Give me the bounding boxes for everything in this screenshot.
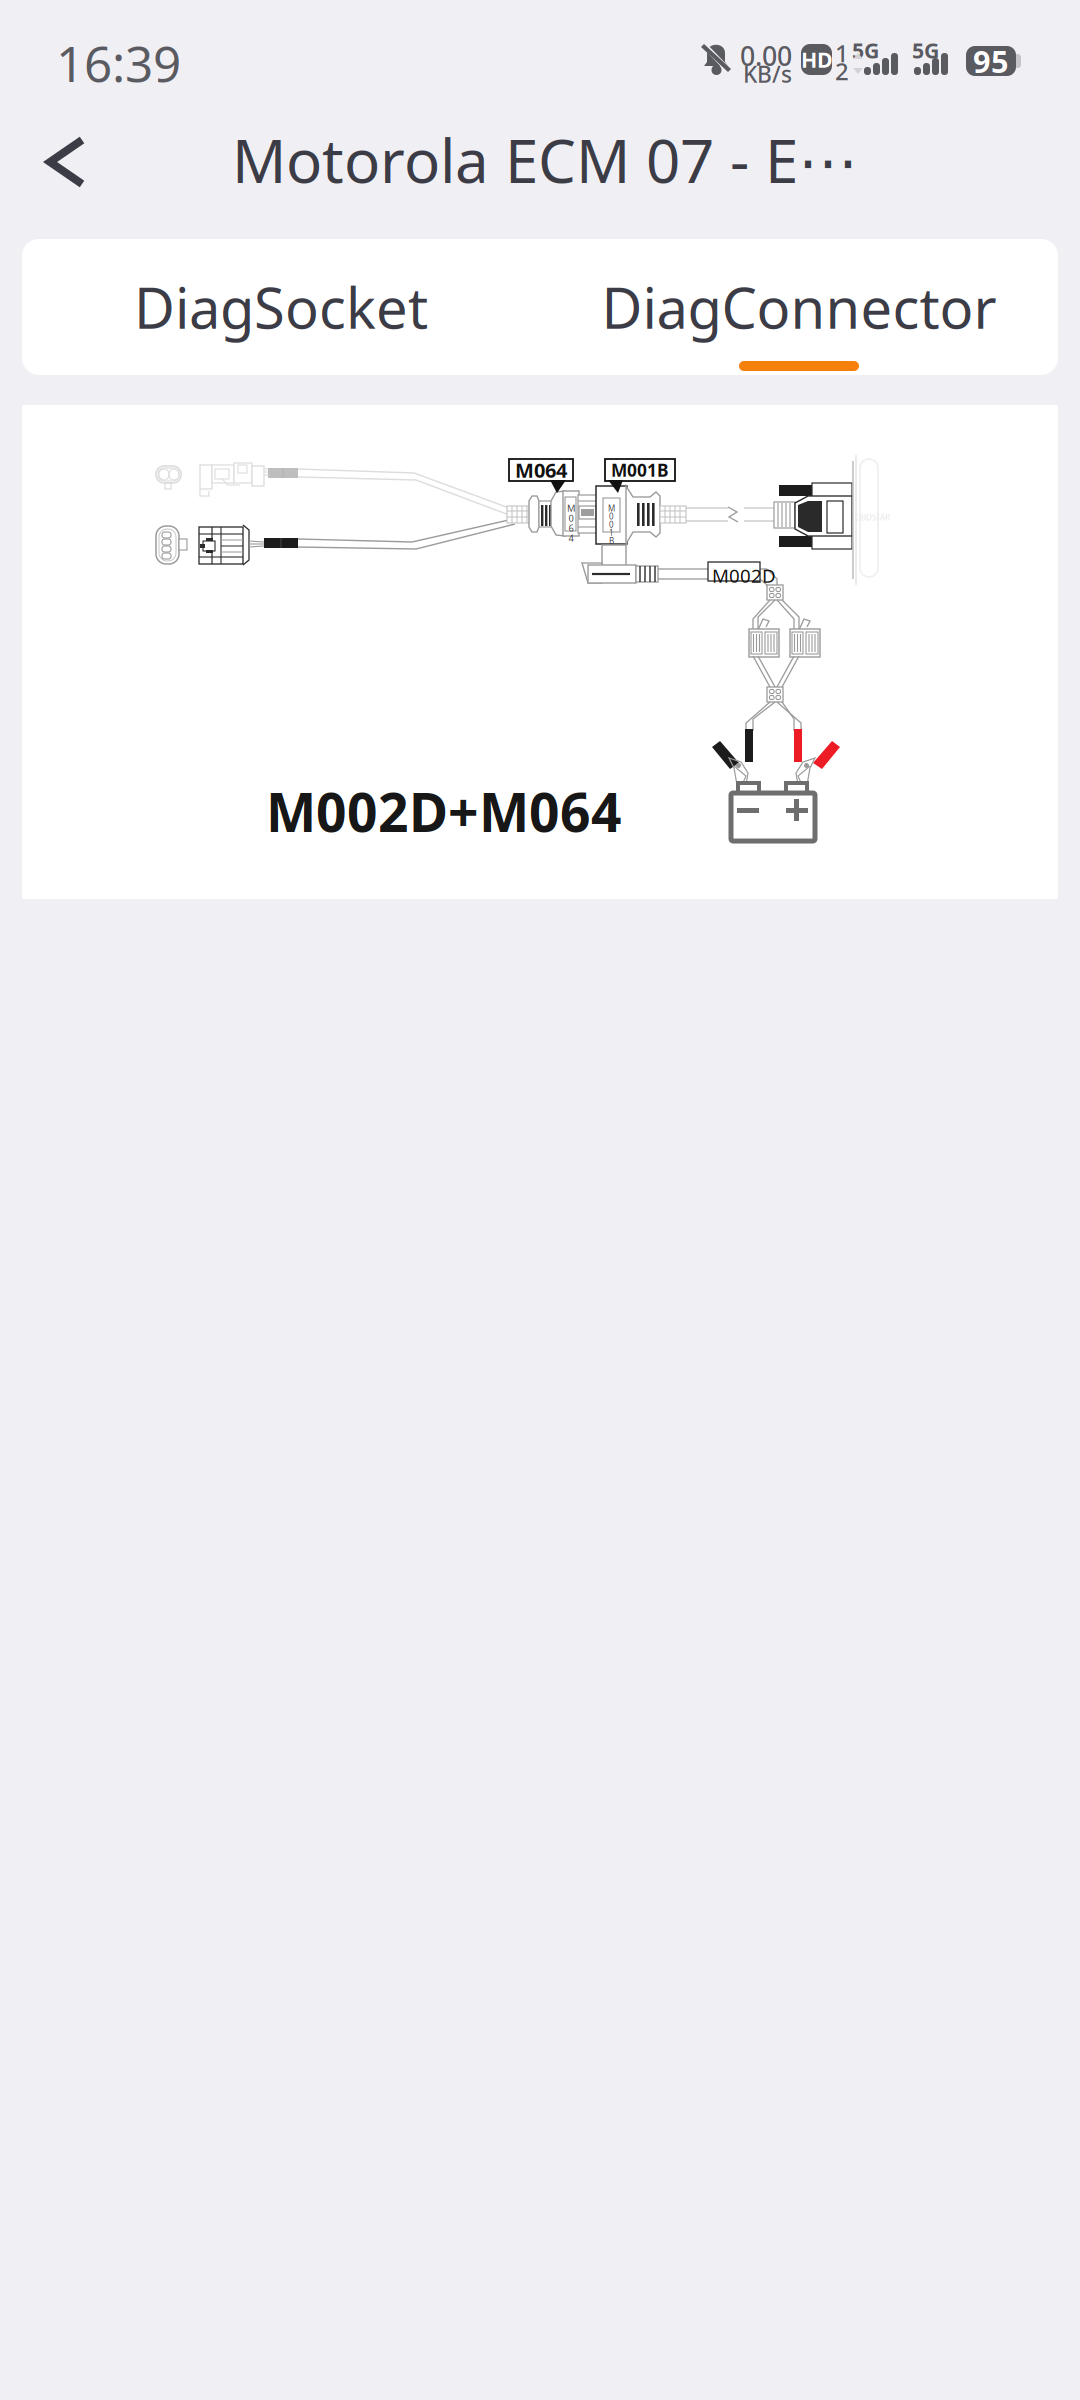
staticText: 16:39 [56,30,181,95]
staticText: 0 [609,519,614,530]
staticText: 0 [568,512,573,524]
button[interactable]: DiagSocket [22,239,540,375]
button[interactable]: DiagConnector [540,239,1058,375]
staticText: 6 [568,522,573,534]
staticText: B [609,535,614,546]
staticText: 2 [835,55,849,87]
staticText: M064 [515,457,567,483]
staticText: 0.00 [740,38,792,73]
button[interactable]: Back [10,100,120,210]
staticText: 5G [852,36,879,64]
staticText: 95 [973,41,1009,81]
staticText: M001B [611,458,669,481]
staticText: HD [801,45,833,74]
staticText: DiagConnector [601,270,996,344]
staticText: DiagSocket [134,270,428,344]
staticText: KB/s [743,59,792,89]
staticText: Motorola ECM 07 - E⋯ [232,120,858,200]
staticText: 1 [609,527,614,538]
staticText: 4 [568,532,573,544]
staticText: 5G [912,36,939,64]
staticText: M002D+M064 [266,776,622,847]
staticText: 0 [609,511,614,522]
staticText: M [608,503,615,514]
staticText: M002D [712,563,776,588]
staticText: OBDSTAR [855,512,890,523]
staticText: 1 [835,37,849,69]
staticText: M [567,502,575,514]
